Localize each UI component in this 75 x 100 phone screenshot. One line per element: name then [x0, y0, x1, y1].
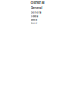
staticText: General — [30, 0, 44, 5]
staticText: General — [30, 19, 36, 21]
staticText: General — [30, 15, 38, 18]
staticText: General — [30, 6, 42, 10]
staticText: General — [30, 11, 41, 14]
staticText: General — [30, 22, 36, 24]
